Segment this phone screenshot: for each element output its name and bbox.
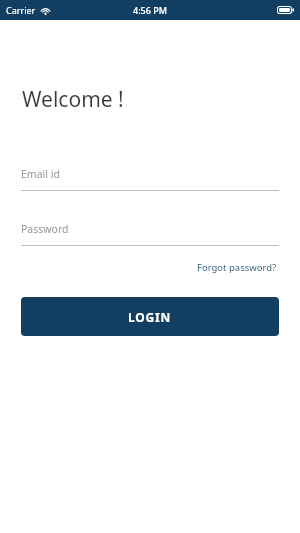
button[interactable]: Forgot password? bbox=[195, 258, 279, 277]
staticText: Email id bbox=[21, 167, 60, 181]
button[interactable]: Email id bbox=[21, 167, 279, 191]
button[interactable]: Password bbox=[21, 222, 279, 246]
button[interactable]: LOGIN bbox=[21, 297, 279, 336]
staticText: LOGIN bbox=[128, 309, 172, 325]
staticText: Welcome ! bbox=[22, 85, 124, 114]
staticText: 4:56 PM bbox=[133, 4, 167, 16]
staticText: Forgot password? bbox=[197, 261, 277, 274]
staticText: Carrier bbox=[6, 4, 36, 16]
staticText: Password bbox=[21, 222, 69, 236]
